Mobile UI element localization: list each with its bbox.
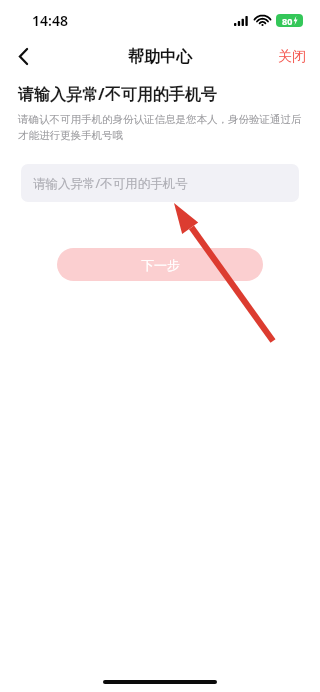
button[interactable]: Back	[0, 40, 46, 73]
button[interactable]: 关闭	[264, 40, 320, 73]
staticText: 80	[282, 15, 293, 27]
staticText: 下一步	[141, 257, 180, 273]
staticText: 14:48	[32, 11, 68, 30]
staticText: 请输入异常/不可用的手机号	[33, 175, 188, 192]
staticText: 关闭	[278, 48, 306, 66]
button[interactable]: 请输入异常/不可用的手机号	[21, 164, 299, 202]
staticText: 请确认不可用手机的身份认证信息是您本人，身份验证通过后 才能进行更换手机号哦	[18, 113, 302, 142]
staticText: 帮助中心	[128, 47, 192, 67]
staticText: 请输入异常/不可用的手机号	[18, 83, 217, 105]
button[interactable]: 下一步	[57, 248, 263, 281]
